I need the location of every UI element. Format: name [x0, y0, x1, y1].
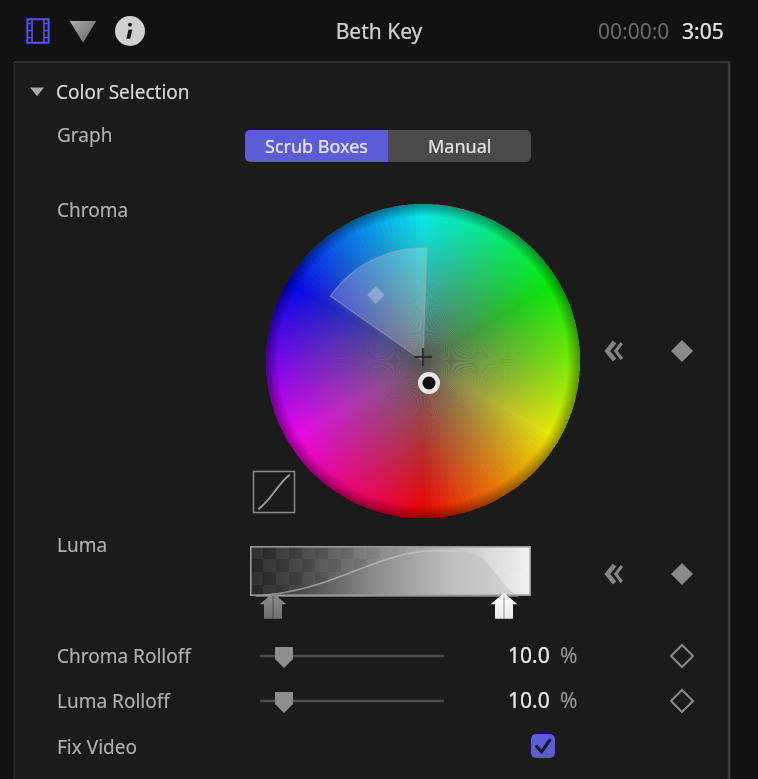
staticText: Scrub Boxes: [265, 134, 368, 159]
staticText: Manual: [428, 134, 492, 159]
button[interactable]: Scrub Boxes: [245, 130, 388, 162]
button[interactable]: Fix Video checkbox: [531, 734, 555, 758]
staticText: Luma Rolloff: [57, 688, 170, 714]
staticText: 10.0: [508, 641, 550, 670]
staticText: %: [560, 641, 578, 670]
button[interactable]: Curve: [253, 471, 295, 513]
staticText: 10.0: [508, 686, 550, 715]
staticText: Graph: [57, 122, 113, 148]
button[interactable]: Keyframe: [668, 688, 696, 714]
button[interactable]: Reset: [600, 338, 628, 364]
staticText: Fix Video: [57, 734, 137, 760]
button[interactable]: Keyframe: [668, 338, 696, 364]
button[interactable]: Keyframe: [668, 643, 696, 669]
staticText: %: [560, 686, 578, 715]
button[interactable]: Reset: [600, 561, 628, 587]
button[interactable]: Chroma color wheel: [258, 196, 588, 526]
button[interactable]: Keyframe: [668, 561, 696, 587]
staticText: 00:00:0: [598, 17, 670, 46]
button[interactable]: Clip inspector: [24, 17, 52, 45]
button[interactable]: Luma low handle: [258, 593, 288, 621]
staticText: Luma: [57, 532, 108, 558]
staticText: 3:05: [682, 17, 724, 46]
staticText: Color Selection: [56, 79, 190, 105]
staticText: Chroma: [57, 197, 129, 223]
staticText: Beth Key: [0, 17, 758, 47]
button[interactable]: Video inspector: [68, 17, 98, 45]
button[interactable]: Info: [114, 15, 146, 47]
button[interactable]: Rolloff slider: [258, 688, 448, 714]
button[interactable]: Rolloff slider: [258, 643, 448, 669]
button[interactable]: Color Selection: [28, 78, 228, 104]
button[interactable]: Manual: [388, 130, 531, 162]
button[interactable]: Luma high handle: [489, 593, 519, 621]
staticText: Chroma Rolloff: [57, 643, 191, 669]
